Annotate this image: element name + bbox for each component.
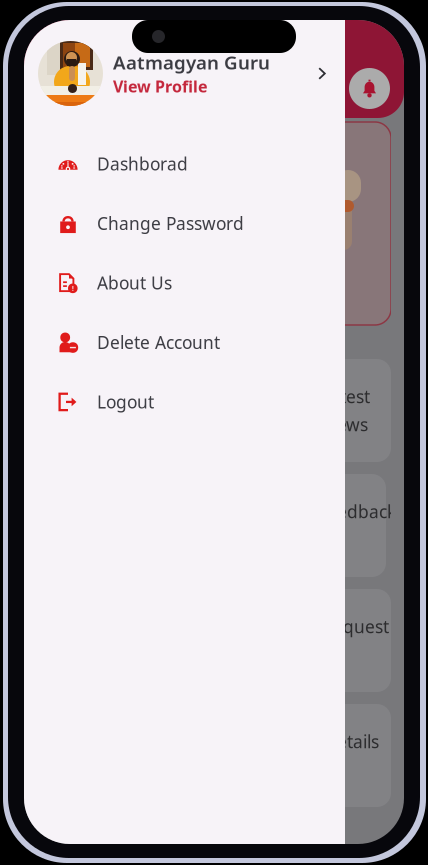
button[interactable]: Delete Account bbox=[24, 312, 345, 372]
staticText: details bbox=[326, 730, 379, 753]
button[interactable]: Logout bbox=[24, 372, 345, 431]
staticText: Dashborad bbox=[97, 152, 188, 175]
button[interactable]: Dashborad bbox=[24, 134, 345, 193]
button[interactable]: Change Password bbox=[24, 193, 345, 253]
staticText: request bbox=[326, 615, 389, 638]
staticText: news bbox=[326, 413, 368, 436]
button[interactable]: request bbox=[43, 589, 391, 692]
staticText: feedback bbox=[321, 500, 396, 523]
staticText: latest bbox=[326, 385, 370, 408]
button[interactable]: About Us bbox=[24, 253, 345, 312]
button[interactable]: Aatmagyan Guru bbox=[24, 20, 345, 134]
staticText: Delete Account bbox=[97, 331, 220, 354]
staticText: About Us bbox=[97, 271, 172, 294]
staticText: View Profile bbox=[113, 76, 208, 97]
staticText: Aatmagyan Guru bbox=[113, 50, 270, 75]
button[interactable]: latest bbox=[43, 359, 391, 462]
staticText: Logout bbox=[97, 390, 154, 413]
button[interactable]: feedback bbox=[43, 474, 391, 577]
button[interactable]: Notifications bbox=[349, 68, 404, 118]
button[interactable]: details bbox=[43, 704, 391, 807]
staticText: Change Password bbox=[97, 212, 244, 235]
